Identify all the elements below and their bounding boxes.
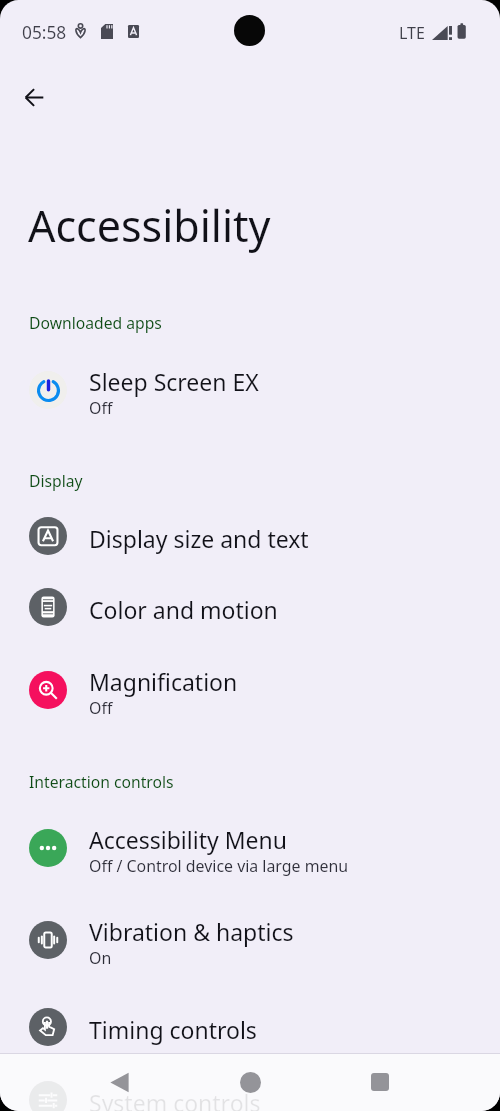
staticText: Color and motion <box>89 594 278 625</box>
button[interactable]: Magnification <box>0 658 500 722</box>
staticText: Display <box>29 470 83 491</box>
staticText: Off <box>89 697 113 719</box>
button[interactable]: Recents <box>360 1062 400 1102</box>
staticText: Magnification <box>89 666 238 697</box>
button[interactable]: System controls <box>0 1068 500 1111</box>
button[interactable]: Display size and text <box>0 504 500 568</box>
staticText: On <box>89 947 112 969</box>
staticText: Downloaded apps <box>29 312 162 333</box>
staticText: Display size and text <box>89 523 309 554</box>
button[interactable]: Vibration & haptics <box>0 908 500 972</box>
staticText: Sleep Screen EX <box>89 366 259 397</box>
staticText: Interaction controls <box>29 771 174 792</box>
button[interactable]: Color and motion <box>0 575 500 639</box>
staticText: LTE <box>399 22 425 44</box>
button[interactable]: Home <box>230 1062 270 1102</box>
button[interactable]: Timing controls <box>0 995 500 1059</box>
staticText: Accessibility <box>28 196 271 255</box>
staticText: Off <box>89 397 113 419</box>
staticText: Accessibility Menu <box>89 824 287 855</box>
button[interactable]: Back <box>99 1062 139 1102</box>
staticText: System controls <box>89 1087 261 1111</box>
staticText: Vibration & haptics <box>89 916 294 947</box>
staticText: Timing controls <box>89 1014 257 1045</box>
button[interactable]: Accessibility Menu <box>0 816 500 880</box>
staticText: 05:58 <box>22 21 67 45</box>
button[interactable]: Back <box>12 75 56 119</box>
staticText: Off / Control device via large menu <box>89 855 349 877</box>
button[interactable]: Sleep Screen EX <box>0 358 500 422</box>
